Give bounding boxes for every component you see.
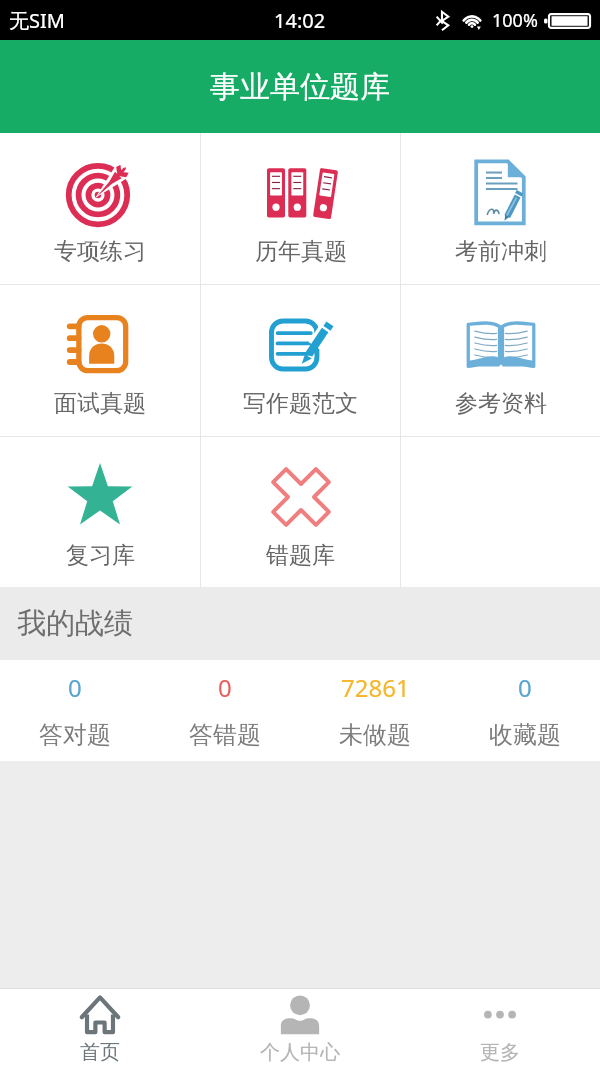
button[interactable]: 考前冲刺: [401, 133, 600, 284]
staticText: 答对题: [39, 720, 111, 750]
staticText: 首页: [80, 1040, 120, 1065]
staticText: 复习库: [66, 541, 135, 570]
staticText: 写作题范文: [243, 389, 358, 418]
staticText: 收藏题: [489, 720, 561, 750]
staticText: 72861: [341, 671, 410, 704]
staticText: 未做题: [339, 720, 411, 750]
staticText: 无SIM: [9, 7, 65, 34]
button[interactable]: 0: [150, 660, 300, 761]
button[interactable]: 复习库: [0, 437, 200, 587]
button[interactable]: 更多: [400, 989, 600, 1067]
staticText: 0: [218, 671, 232, 704]
staticText: 专项练习: [54, 237, 146, 266]
button[interactable]: 面试真题: [0, 285, 200, 436]
button[interactable]: 0: [0, 660, 150, 761]
staticText: 14:02: [274, 7, 326, 34]
button[interactable]: 0: [450, 660, 600, 761]
staticText: 事业单位题库: [210, 68, 390, 106]
staticText: 历年真题: [255, 237, 347, 266]
staticText: 100%: [492, 8, 538, 33]
button[interactable]: 首页: [0, 989, 200, 1067]
staticText: 面试真题: [54, 389, 146, 418]
staticText: 0: [518, 671, 532, 704]
staticText: 答错题: [189, 720, 261, 750]
button[interactable]: 专项练习: [0, 133, 200, 284]
button[interactable]: 错题库: [201, 437, 400, 587]
button[interactable]: 个人中心: [200, 989, 400, 1067]
staticText: 个人中心: [260, 1040, 340, 1065]
staticText: 参考资料: [455, 389, 547, 418]
staticText: 我的战绩: [17, 605, 133, 642]
staticText: 考前冲刺: [455, 237, 547, 266]
staticText: 0: [68, 671, 82, 704]
button[interactable]: 写作题范文: [201, 285, 400, 436]
button[interactable]: 参考资料: [401, 285, 600, 436]
button[interactable]: 历年真题: [201, 133, 400, 284]
button[interactable]: 72861: [300, 660, 450, 761]
staticText: 错题库: [266, 541, 335, 570]
staticText: 更多: [480, 1040, 520, 1065]
